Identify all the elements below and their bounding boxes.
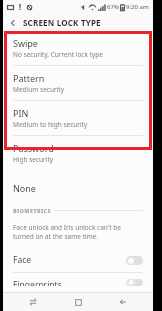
staticText: High security (13, 155, 54, 164)
staticText: Face (13, 254, 32, 266)
button[interactable]: PIN (3, 101, 153, 136)
staticText: Fingerprints (13, 279, 62, 286)
staticText: Pattern (13, 72, 45, 84)
button[interactable]: Back (3, 14, 23, 31)
button[interactable]: Password (3, 136, 153, 170)
staticText: SCREEN LOCK TYPE (23, 17, 101, 28)
staticText: Swipe (13, 37, 38, 49)
button[interactable]: Pattern (3, 66, 153, 101)
button[interactable]: Face (3, 248, 153, 273)
staticText: Face unlock and Iris unlock can't be tur… (13, 223, 139, 241)
staticText: BIOMETRICS (13, 207, 51, 214)
staticText: Medium to high security (13, 120, 88, 129)
staticText: Password (13, 142, 54, 154)
button[interactable]: Swipe (3, 31, 153, 66)
button[interactable]: Fingerprints (3, 273, 153, 292)
button[interactable]: Recent apps (18, 293, 48, 311)
staticText: 9:20 am (126, 3, 149, 11)
staticText: Medium security (13, 85, 64, 94)
button[interactable]: Home (63, 293, 93, 311)
button[interactable]: None (3, 174, 153, 202)
staticText: No security, Current lock type (13, 50, 103, 59)
staticText: 67% (107, 3, 119, 11)
button[interactable]: Back (108, 293, 138, 311)
staticText: PIN (13, 107, 29, 119)
staticText: None (13, 182, 36, 194)
